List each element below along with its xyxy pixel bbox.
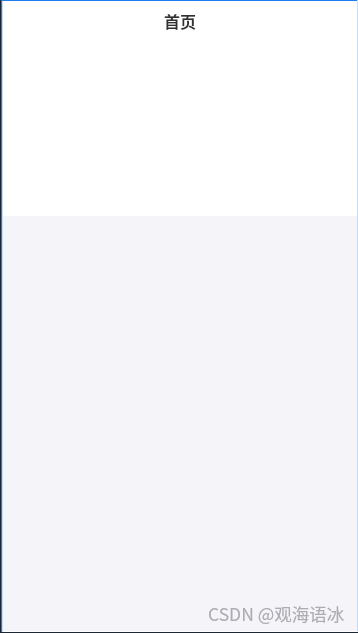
staticText: 首页 [2, 9, 358, 32]
button[interactable]: 首页 [0, 0, 358, 44]
staticText: CSDN @观海语冰 [208, 601, 345, 626]
